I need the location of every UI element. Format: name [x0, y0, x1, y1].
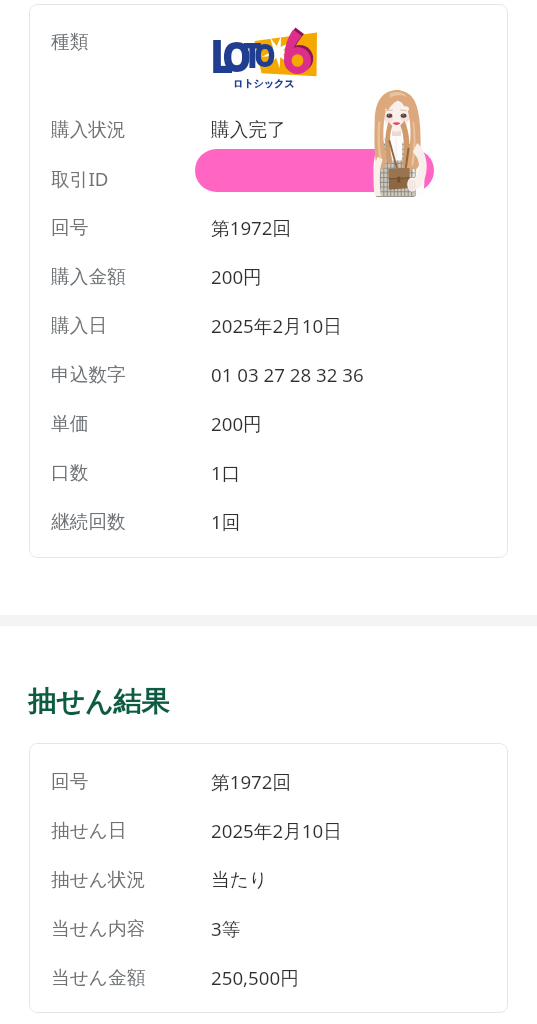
- button[interactable]: 口数: [30, 448, 507, 497]
- staticText: 購入状況: [51, 118, 126, 142]
- staticText: 第1972回: [211, 215, 292, 241]
- staticText: O: [254, 34, 276, 76]
- staticText: 抽せん結果: [28, 684, 170, 719]
- staticText: 2025年2月10日: [211, 313, 342, 339]
- button[interactable]: 回号: [30, 203, 507, 252]
- staticText: 回号: [51, 770, 89, 794]
- button[interactable]: 当せん内容: [30, 904, 507, 953]
- staticText: 当せん金額: [51, 966, 146, 990]
- staticText: 第1972回: [211, 769, 292, 795]
- staticText: 当たり: [211, 868, 268, 892]
- staticText: 2025年2月10日: [211, 818, 342, 844]
- button[interactable]: 購入金額: [30, 252, 507, 301]
- button[interactable]: 購入日: [30, 301, 507, 350]
- staticText: 取引ID: [51, 166, 109, 192]
- staticText: 購入完了: [211, 118, 286, 142]
- staticText: L: [210, 24, 234, 87]
- staticText: 単価: [51, 412, 89, 436]
- staticText: 1回: [211, 509, 241, 535]
- staticText: 種類: [51, 30, 89, 54]
- staticText: 抽せん日: [51, 819, 127, 843]
- staticText: 3等: [211, 916, 241, 942]
- staticText: 継続回数: [51, 510, 126, 534]
- staticText: 申込数字: [51, 363, 126, 387]
- staticText: 200円: [211, 264, 262, 290]
- button[interactable]: 継続回数: [30, 497, 507, 546]
- button[interactable]: 種類: [30, 17, 507, 100]
- button[interactable]: 回号: [30, 757, 507, 806]
- staticText: 01 03 27 28 32 36: [211, 362, 364, 387]
- staticText: 口数: [51, 461, 89, 485]
- staticText: 200円: [211, 411, 262, 437]
- button[interactable]: 抽せん日: [30, 806, 507, 855]
- button[interactable]: 単価: [30, 399, 507, 448]
- other: LOTO 6: [206, 28, 320, 92]
- staticText: 抽せん状況: [51, 868, 146, 892]
- button[interactable]: 取引ID: [30, 154, 507, 203]
- staticText: 購入金額: [51, 265, 126, 289]
- staticText: ロトシックス: [233, 77, 295, 90]
- button[interactable]: 購入状況: [30, 105, 507, 154]
- staticText: 購入日: [51, 314, 108, 338]
- staticText: 1口: [211, 460, 241, 486]
- staticText: 250,500円: [211, 965, 299, 991]
- button[interactable]: 抽せん状況: [30, 855, 507, 904]
- staticText: O: [222, 27, 252, 84]
- button[interactable]: 当せん金額: [30, 953, 507, 1002]
- staticText: T: [243, 30, 262, 79]
- button[interactable]: 申込数字: [30, 350, 507, 399]
- staticText: 当せん内容: [51, 917, 146, 941]
- staticText: 回号: [51, 216, 89, 240]
